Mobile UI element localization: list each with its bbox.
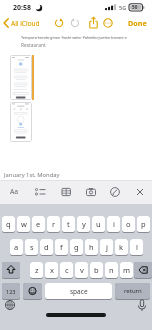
- staticText: a: [14, 242, 19, 252]
- button[interactable]: [10, 55, 32, 100]
- staticText: m: [123, 265, 131, 275]
- staticText: l: [136, 242, 138, 252]
- button[interactable]: w: [17, 216, 30, 233]
- staticText: g: [74, 242, 79, 252]
- button[interactable]: x: [45, 262, 58, 279]
- staticText: p: [141, 219, 146, 229]
- button[interactable]: n: [105, 262, 118, 279]
- staticText: e: [36, 219, 41, 229]
- staticText: c: [65, 265, 69, 275]
- staticText: x: [50, 265, 54, 275]
- button[interactable]: v: [75, 262, 88, 279]
- staticText: z: [35, 265, 39, 275]
- staticText: Tempura kondo ginza Sushi saito Yakiniku…: [21, 35, 127, 40]
- staticText: i: [113, 219, 115, 229]
- staticText: f: [60, 242, 63, 252]
- staticText: b: [94, 265, 99, 275]
- button[interactable]: o: [122, 216, 135, 233]
- button[interactable]: h: [85, 239, 98, 256]
- staticText: j: [106, 242, 108, 252]
- staticText: n: [109, 265, 114, 275]
- button[interactable]: Aa: [10, 187, 19, 196]
- staticText: s: [30, 242, 34, 252]
- button[interactable]: i: [107, 216, 120, 233]
- staticText: d: [44, 242, 49, 252]
- button[interactable]: e: [32, 216, 45, 233]
- staticText: 50: [132, 4, 138, 10]
- button[interactable]: t: [62, 216, 75, 233]
- button[interactable]: return: [115, 283, 150, 300]
- button[interactable]: k: [115, 239, 128, 256]
- button[interactable]: a: [10, 239, 23, 256]
- staticText: o: [126, 219, 131, 229]
- button[interactable]: [2, 262, 20, 279]
- staticText: h: [89, 242, 94, 252]
- button[interactable]: January 1st, Monday: [4, 171, 60, 179]
- staticText: All iCloud: [11, 19, 40, 28]
- staticText: t: [67, 219, 70, 229]
- button[interactable]: c: [60, 262, 73, 279]
- staticText: Restaurant: [21, 42, 46, 49]
- button[interactable]: u: [92, 216, 105, 233]
- staticText: y: [82, 219, 86, 229]
- staticText: return: [124, 287, 142, 295]
- staticText: 5G: [119, 4, 127, 11]
- button[interactable]: b: [90, 262, 103, 279]
- button[interactable]: l: [130, 239, 143, 256]
- button[interactable]: m: [120, 262, 133, 279]
- staticText: Done: [128, 18, 147, 28]
- staticText: 20:58: [13, 3, 31, 13]
- button[interactable]: All iCloud: [3, 14, 40, 32]
- staticText: q: [6, 219, 11, 229]
- button[interactable]: [134, 262, 152, 279]
- staticText: k: [119, 242, 124, 252]
- staticText: w: [21, 219, 27, 229]
- button[interactable]: 123: [2, 283, 20, 300]
- staticText: 123: [6, 288, 16, 295]
- button[interactable]: p: [137, 216, 150, 233]
- button[interactable]: q: [2, 216, 15, 233]
- staticText: January 1st, Monday: [4, 171, 60, 179]
- button[interactable]: Done: [128, 18, 147, 28]
- staticText: space: [70, 287, 88, 296]
- button[interactable]: space: [45, 283, 112, 300]
- button[interactable]: [10, 102, 32, 142]
- button[interactable]: y: [77, 216, 90, 233]
- button[interactable]: g: [70, 239, 83, 256]
- staticText: v: [80, 265, 84, 275]
- button[interactable]: j: [100, 239, 113, 256]
- button[interactable]: f: [55, 239, 68, 256]
- button[interactable]: [23, 283, 42, 300]
- button[interactable]: d: [40, 239, 53, 256]
- button[interactable]: s: [25, 239, 38, 256]
- staticText: u: [96, 219, 101, 229]
- button[interactable]: z: [30, 262, 43, 279]
- button[interactable]: r: [47, 216, 60, 233]
- staticText: Aa: [10, 187, 19, 196]
- staticText: r: [52, 219, 56, 229]
